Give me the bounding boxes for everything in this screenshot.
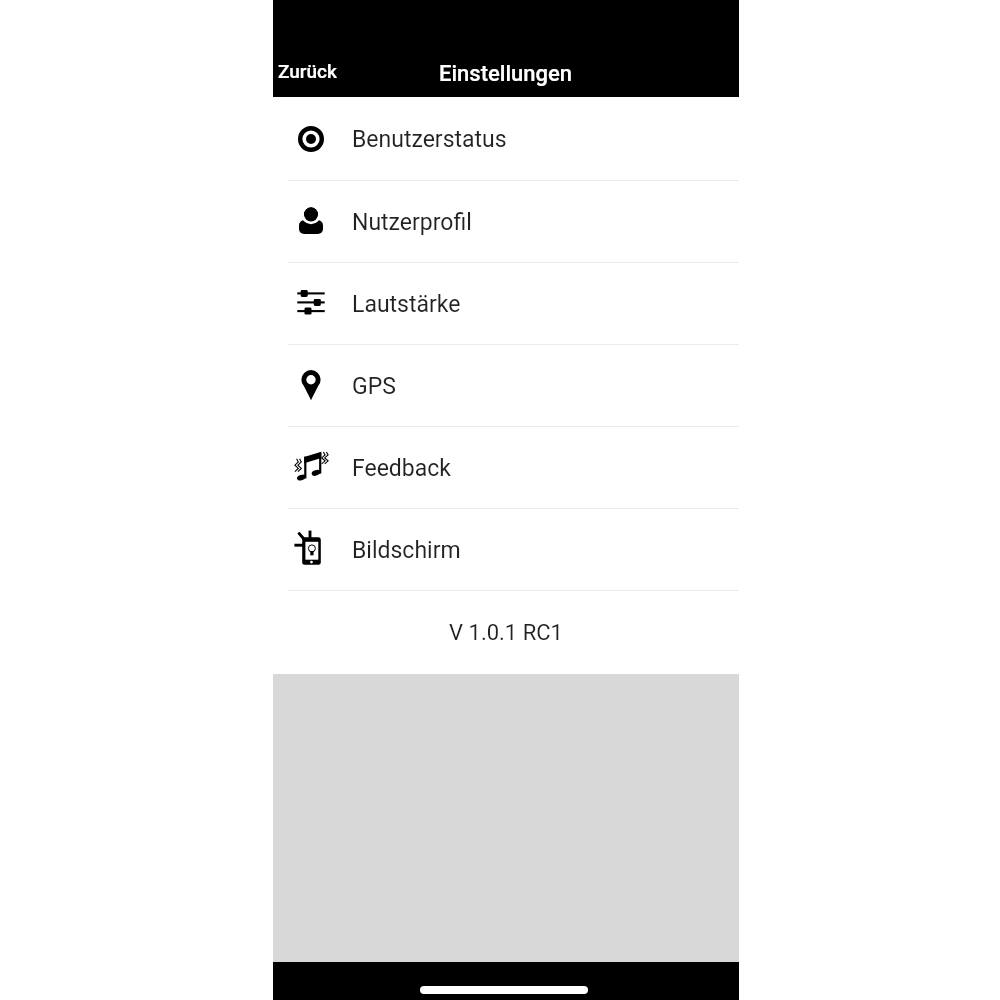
- other: Bildschirm: [291, 530, 331, 570]
- other: Benutzerstatus: [291, 119, 331, 159]
- button[interactable]: GPS: [273, 345, 739, 427]
- button[interactable]: Zurück: [273, 54, 347, 97]
- staticText: Feedback: [352, 455, 451, 482]
- staticText: Bildschirm: [352, 537, 461, 564]
- other: GPS: [291, 366, 331, 406]
- button[interactable]: Feedback: [273, 427, 739, 509]
- button[interactable]: Bildschirm: [273, 509, 739, 591]
- staticText: Einstellungen: [439, 61, 573, 87]
- other: Lautstärke: [291, 284, 331, 324]
- button[interactable]: Nutzerprofil: [273, 181, 739, 263]
- button[interactable]: Benutzerstatus: [273, 97, 739, 181]
- other: Nutzerprofil: [291, 202, 331, 242]
- button[interactable]: Lautstärke: [273, 263, 739, 345]
- other: Feedback: [291, 448, 331, 488]
- staticText: GPS: [352, 373, 396, 400]
- staticText: Lautstärke: [352, 291, 461, 318]
- staticText: Nutzerprofil: [352, 209, 472, 236]
- staticText: V 1.0.1 RC1: [449, 620, 563, 646]
- staticText: Benutzerstatus: [352, 126, 507, 153]
- staticText: Zurück: [278, 60, 337, 82]
